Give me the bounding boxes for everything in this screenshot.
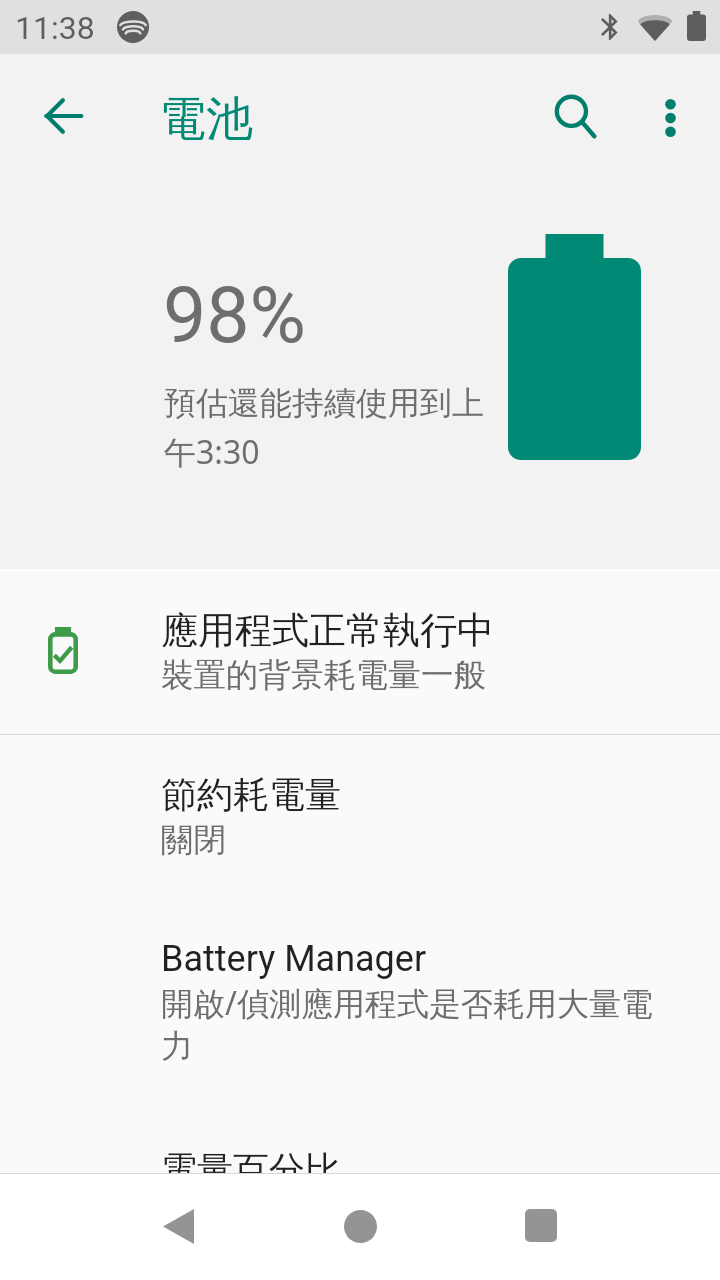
staticText: 電池 xyxy=(159,90,253,149)
button[interactable]: Battery Manager xyxy=(0,903,720,1128)
staticText: 開啟/偵測應用程式是否耗用大量電力 xyxy=(161,981,661,1067)
button[interactable]: Home xyxy=(312,1178,408,1274)
staticText: 電量百分比 xyxy=(161,1147,341,1173)
button[interactable]: 電量百分比 xyxy=(0,1128,720,1173)
button[interactable]: More options xyxy=(614,62,720,174)
staticText: 11:38 xyxy=(15,9,95,47)
staticText: 關閉 xyxy=(161,820,226,861)
staticText: 預估還能持續使用到上午3:30 xyxy=(164,383,494,473)
staticText: 98% xyxy=(163,271,306,361)
button[interactable]: Search xyxy=(519,60,631,172)
button[interactable]: Back xyxy=(8,60,120,172)
button[interactable]: Recents xyxy=(493,1177,589,1273)
staticText: 裝置的背景耗電量一般 xyxy=(161,655,486,696)
button[interactable]: 應用程式正常執行中 xyxy=(0,569,720,734)
button[interactable]: 節約耗電量 xyxy=(0,735,720,903)
staticText: 節約耗電量 xyxy=(161,772,341,817)
button[interactable]: Back xyxy=(130,1178,226,1274)
staticText: 應用程式正常執行中 xyxy=(161,607,494,654)
staticText: Battery Manager xyxy=(161,938,427,980)
